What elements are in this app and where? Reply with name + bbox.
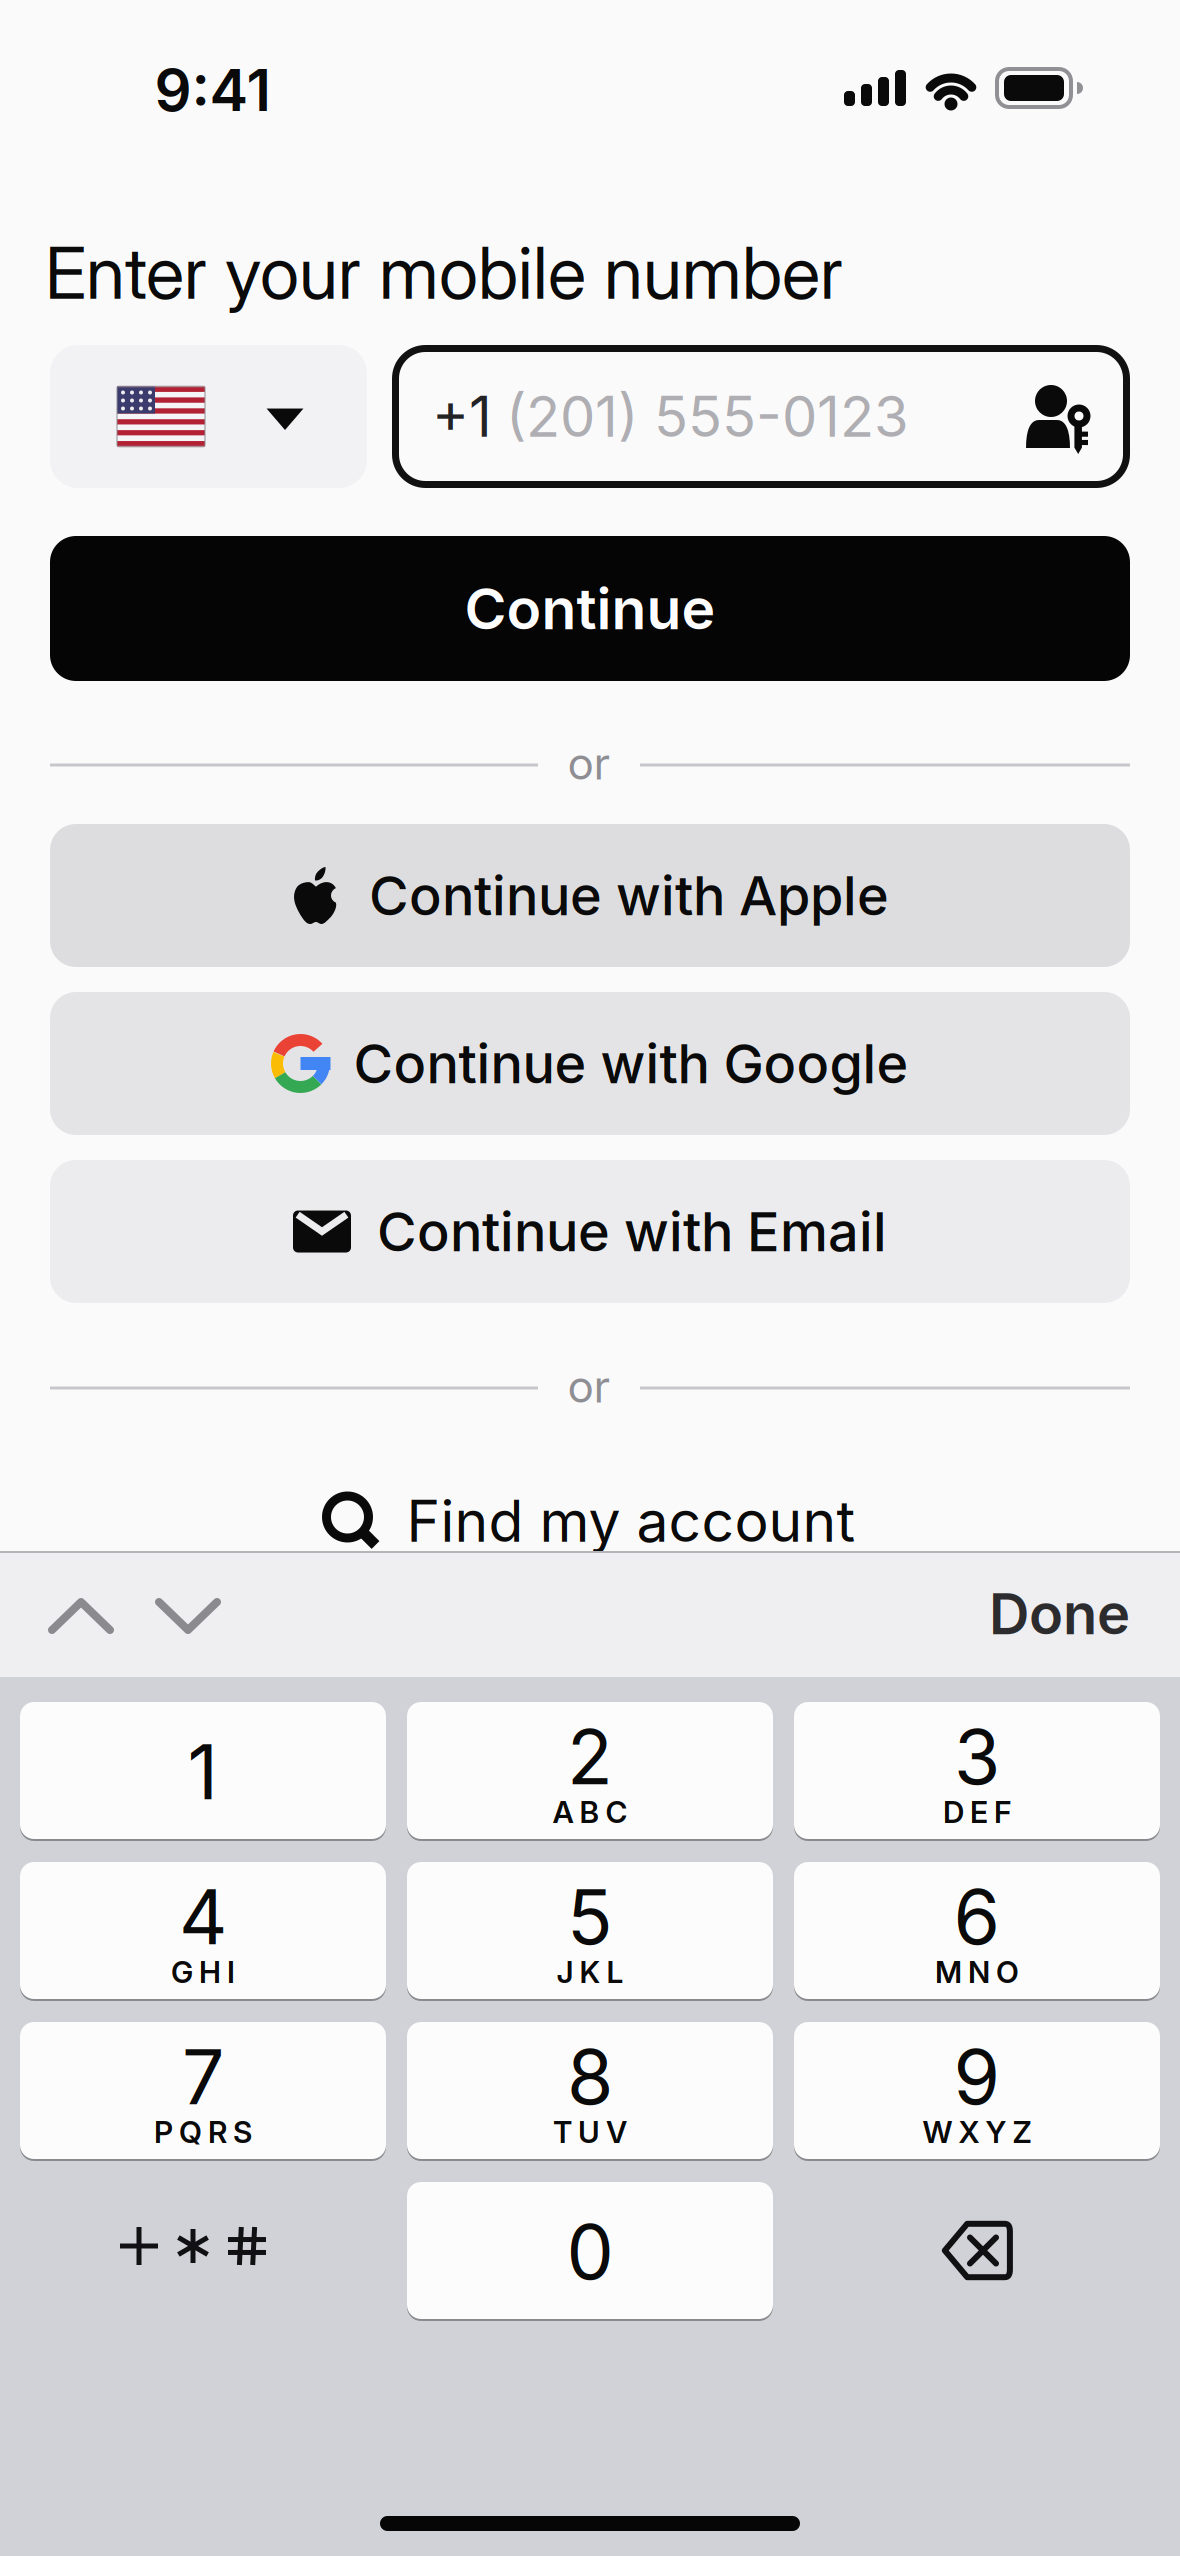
staticText: (201) 555-0123 <box>506 383 909 450</box>
staticText: 2 <box>567 1712 613 1802</box>
button[interactable]: 1 <box>20 1702 386 1839</box>
button[interactable]: 3 <box>794 1702 1160 1839</box>
staticText: 9:41 <box>154 55 271 125</box>
staticText: 6 <box>953 1872 1000 1962</box>
staticText: 7 <box>182 2032 224 2122</box>
staticText: PQRS <box>154 2114 252 2150</box>
staticText: Continue with Google <box>353 1031 908 1096</box>
button[interactable]: 2 <box>407 1702 773 1839</box>
staticText: Continue <box>464 574 715 643</box>
button[interactable]: Continue with Email <box>50 1160 1130 1303</box>
button[interactable]: 4 <box>20 1862 386 1999</box>
button[interactable]: Continue with Google <box>50 992 1130 1135</box>
button[interactable] <box>907 2182 1047 2319</box>
staticText: Continue with Apple <box>369 863 889 928</box>
button[interactable]: 7 <box>20 2022 386 2159</box>
staticText: GHI <box>171 1954 235 1990</box>
button[interactable]: 0 <box>407 2182 773 2319</box>
staticText: 1 <box>187 1727 218 1817</box>
staticText: WXYZ <box>922 2114 1031 2150</box>
staticText: MNO <box>935 1954 1019 1990</box>
staticText: Find my account <box>406 1486 855 1555</box>
button[interactable] <box>93 2177 293 2314</box>
button[interactable]: 9 <box>794 2022 1160 2159</box>
button[interactable] <box>50 345 367 488</box>
button[interactable] <box>41 1586 121 1646</box>
staticText: +1 <box>432 383 492 450</box>
button[interactable]: Find my account <box>324 1486 855 1555</box>
staticText: 5 <box>567 1872 613 1962</box>
staticText: or <box>567 1360 610 1413</box>
staticText: Done <box>989 1580 1130 1648</box>
button[interactable]: Done <box>870 1580 1130 1648</box>
staticText: Enter your mobile number <box>45 230 843 316</box>
staticText: 9 <box>953 2032 1000 2122</box>
button[interactable]: +1 <box>392 345 1130 488</box>
staticText: JKL <box>556 1954 623 1990</box>
staticText: ABC <box>552 1794 627 1830</box>
button[interactable] <box>148 1586 228 1646</box>
button[interactable]: Continue <box>50 536 1130 681</box>
button[interactable]: 5 <box>407 1862 773 1999</box>
staticText: 4 <box>179 1872 227 1962</box>
button[interactable]: Continue with Apple <box>50 824 1130 967</box>
staticText: 0 <box>566 2207 613 2297</box>
staticText: DEF <box>943 1794 1011 1830</box>
staticText: Continue with Email <box>377 1199 887 1264</box>
button[interactable]: 6 <box>794 1862 1160 1999</box>
button[interactable]: 8 <box>407 2022 773 2159</box>
staticText: 3 <box>954 1712 1000 1802</box>
staticText: TUV <box>553 2114 627 2150</box>
staticText: or <box>567 737 610 790</box>
staticText: 8 <box>567 2032 613 2122</box>
